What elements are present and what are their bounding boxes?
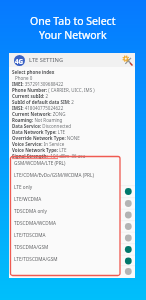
button[interactable]: Settings [121, 54, 134, 67]
staticText: Current Network: ZONG [12, 111, 66, 117]
staticText: IMEI: 357291309688422 [12, 81, 64, 87]
staticText: LTE/TDSCDMA [14, 232, 46, 238]
button[interactable]: LTE/CDMA/EvDo/GSM/WCDMA (PRL) [9, 169, 135, 181]
staticText: Override Network Type: NONE [12, 135, 80, 141]
staticText: Current subId: 2 [12, 93, 49, 99]
staticText: Phone 0 [15, 75, 33, 81]
button[interactable]: 4G [14, 55, 25, 66]
staticText: Select phone index [12, 69, 55, 75]
staticText: Data Service: Disconnected [12, 123, 72, 129]
staticText: SubId of default data SIM: 2 [12, 99, 74, 105]
staticText: IMSI: 418040775024622 [12, 105, 64, 111]
button[interactable]: TDSCDMA/GSM [9, 241, 135, 253]
staticText: Phone Number: ( CARRIER, UICC, IMS ) [12, 87, 95, 93]
staticText: Signal Strength: -104 dBm 36 asu [12, 153, 86, 159]
button[interactable]: LTE/TDSCDMA [9, 229, 135, 241]
staticText: TDSCDMA/GSM [14, 244, 49, 250]
staticText: TDSCDMA/WCDMA [14, 220, 56, 226]
staticText: Data Network Type: LTE [12, 129, 66, 135]
staticText: LTE only [14, 184, 33, 190]
staticText: TDSCDMA only [14, 208, 47, 214]
staticText: Your Network [39, 28, 107, 42]
button[interactable]: TDSCDMA/WCDMA [9, 217, 135, 229]
staticText: Voice Service: In Service [12, 141, 65, 147]
button[interactable]: LTE/WCDMA [9, 193, 135, 205]
staticText: Voice Network Type: LTE [12, 147, 67, 153]
staticText: LTE/CDMA/EvDo/GSM/WCDMA (PRL) [14, 172, 94, 178]
button[interactable]: LTE only [9, 181, 135, 193]
staticText: GSM/WCDMA/LTE (PRL) [14, 160, 66, 166]
staticText: 4G [15, 57, 24, 65]
staticText: Roaming: Not Roaming [12, 117, 63, 123]
staticText: LTE SETTING [29, 56, 64, 64]
staticText: One Tab to Select [30, 14, 116, 28]
button[interactable]: LTE/TDSCDMA/GSM [9, 253, 135, 265]
staticText: LTE/TDSCDMA/GSM [14, 256, 58, 262]
staticText: LTE/WCDMA [14, 196, 42, 202]
button[interactable]: TDSCDMA only [9, 205, 135, 217]
button[interactable]: GSM/WCDMA/LTE (PRL) [9, 157, 135, 169]
